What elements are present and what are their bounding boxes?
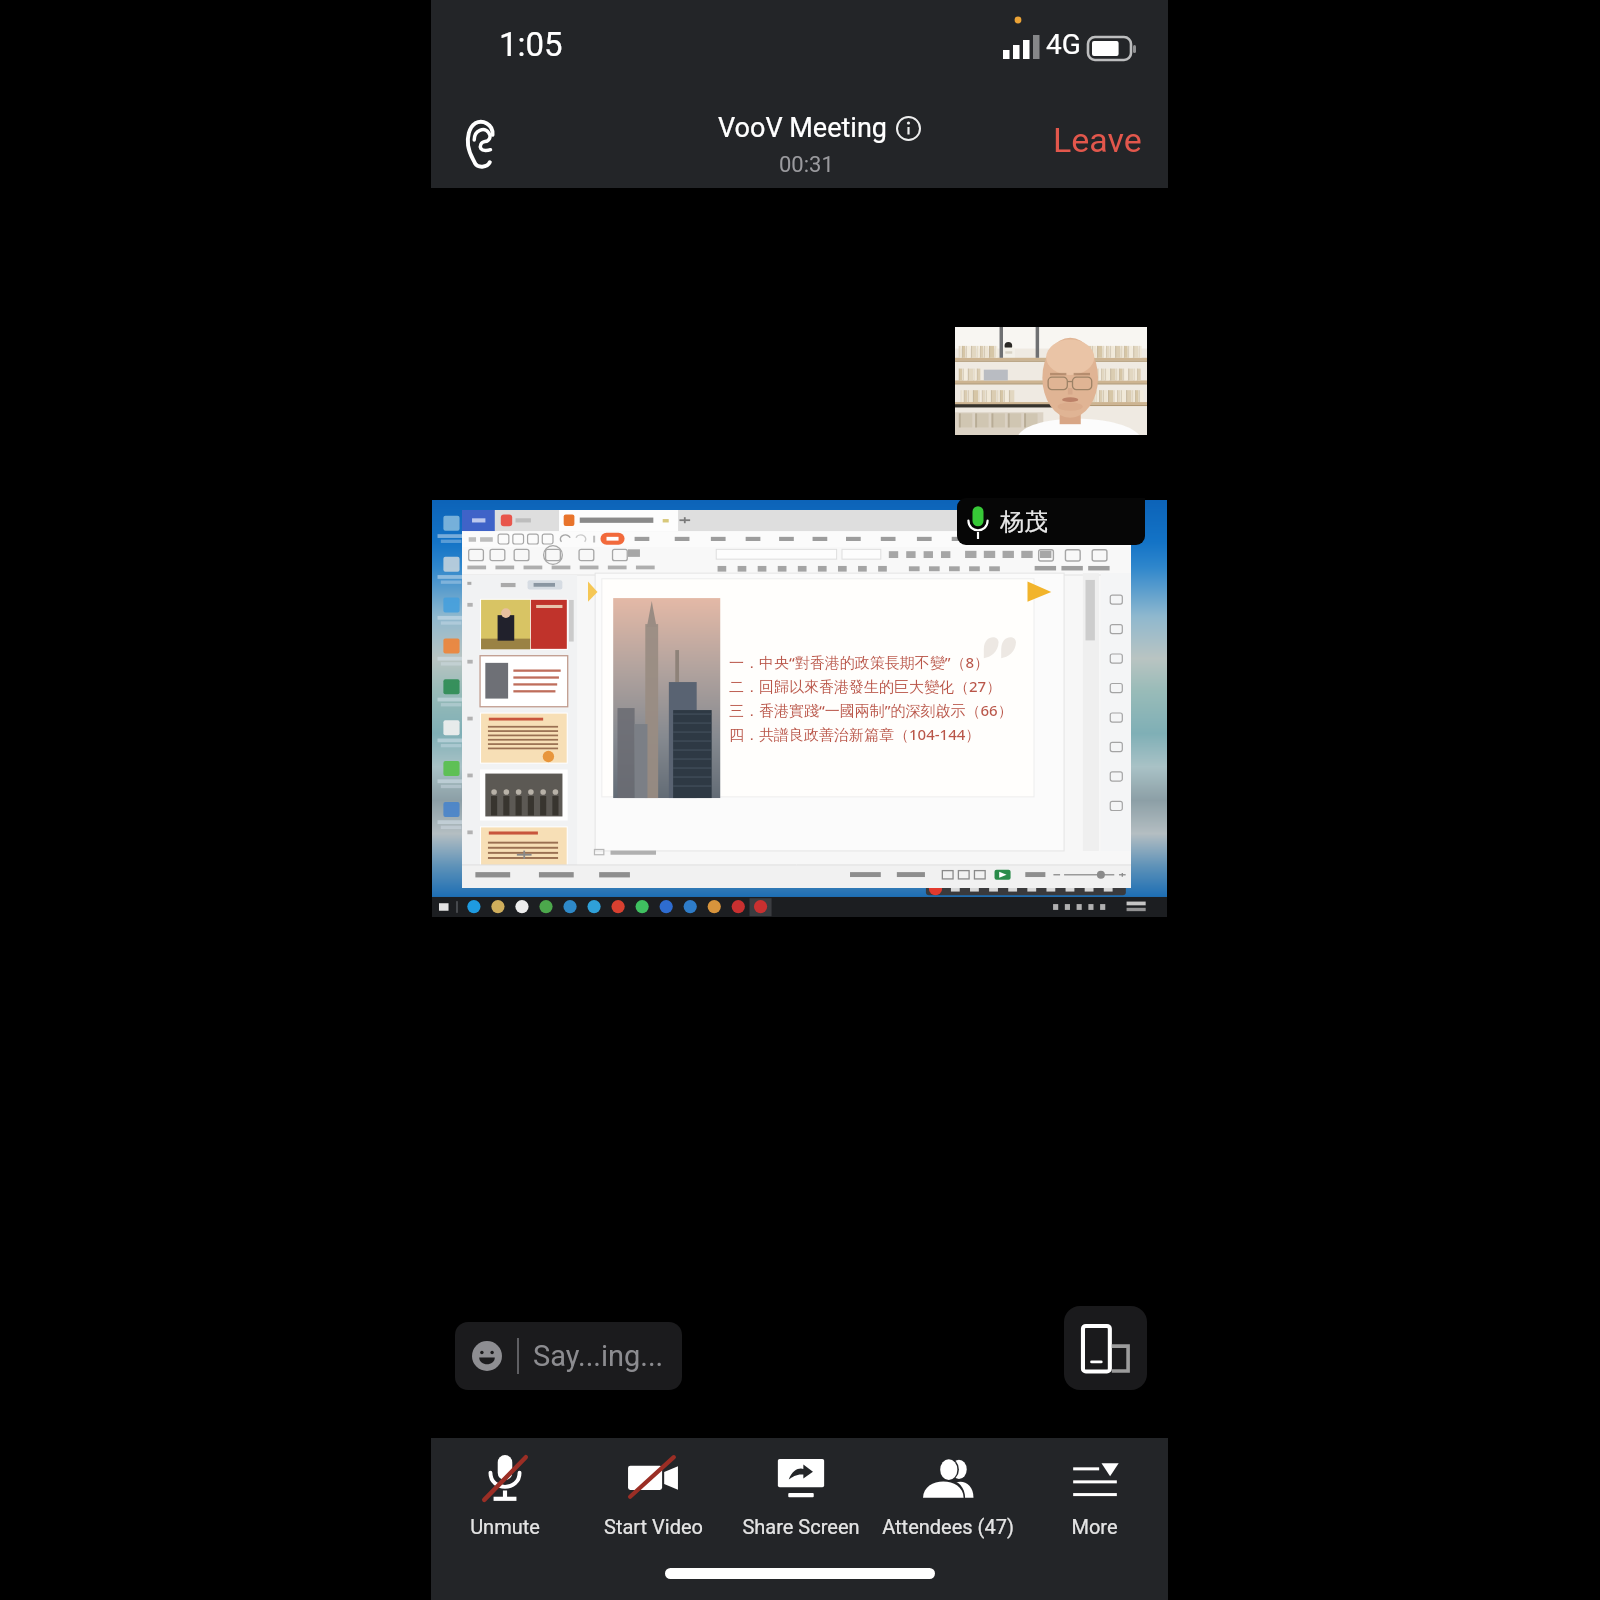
- staticText: Say...ing...: [533, 1339, 664, 1373]
- staticText: Unmute: [470, 1515, 540, 1538]
- button[interactable]: Unmute: [431, 1446, 579, 1551]
- button[interactable]: Start Video: [579, 1446, 727, 1551]
- button[interactable]: Leave: [1037, 112, 1158, 168]
- staticText: 00:31: [779, 152, 834, 178]
- button[interactable]: Switch layout: [1064, 1306, 1147, 1390]
- staticText: Attendees (47): [882, 1515, 1014, 1538]
- button[interactable]: Attendees (47): [874, 1446, 1021, 1551]
- button[interactable]: Meeting info: [896, 116, 921, 141]
- staticText: Share Screen: [742, 1515, 860, 1538]
- staticText: 4G: [1046, 28, 1081, 61]
- staticText: VooV Meeting: [718, 112, 887, 144]
- button[interactable]: Self video: [955, 327, 1147, 435]
- staticText: 四．共譜良政善治新篇章（104-144）: [729, 724, 981, 744]
- button[interactable]: More: [1021, 1446, 1168, 1551]
- staticText: Leave: [1053, 120, 1142, 160]
- staticText: 1:05: [499, 25, 563, 64]
- staticText: 杨茂: [1000, 507, 1048, 537]
- staticText: 一．中央“對香港的政策長期不變”（8）: [729, 652, 990, 672]
- button[interactable]: Audio output: [438, 100, 524, 186]
- staticText: Start Video: [604, 1515, 703, 1538]
- staticText: More: [1071, 1515, 1118, 1538]
- button[interactable]: Shared screen: [432, 500, 1167, 917]
- button[interactable]: Share Screen: [727, 1446, 874, 1551]
- staticText: 三．香港實踐“一國兩制”的深刻啟示（66）: [729, 700, 1013, 720]
- staticText: 二．回歸以來香港發生的巨大變化（27）: [729, 676, 1002, 696]
- button[interactable]: Say...ing...: [455, 1322, 682, 1390]
